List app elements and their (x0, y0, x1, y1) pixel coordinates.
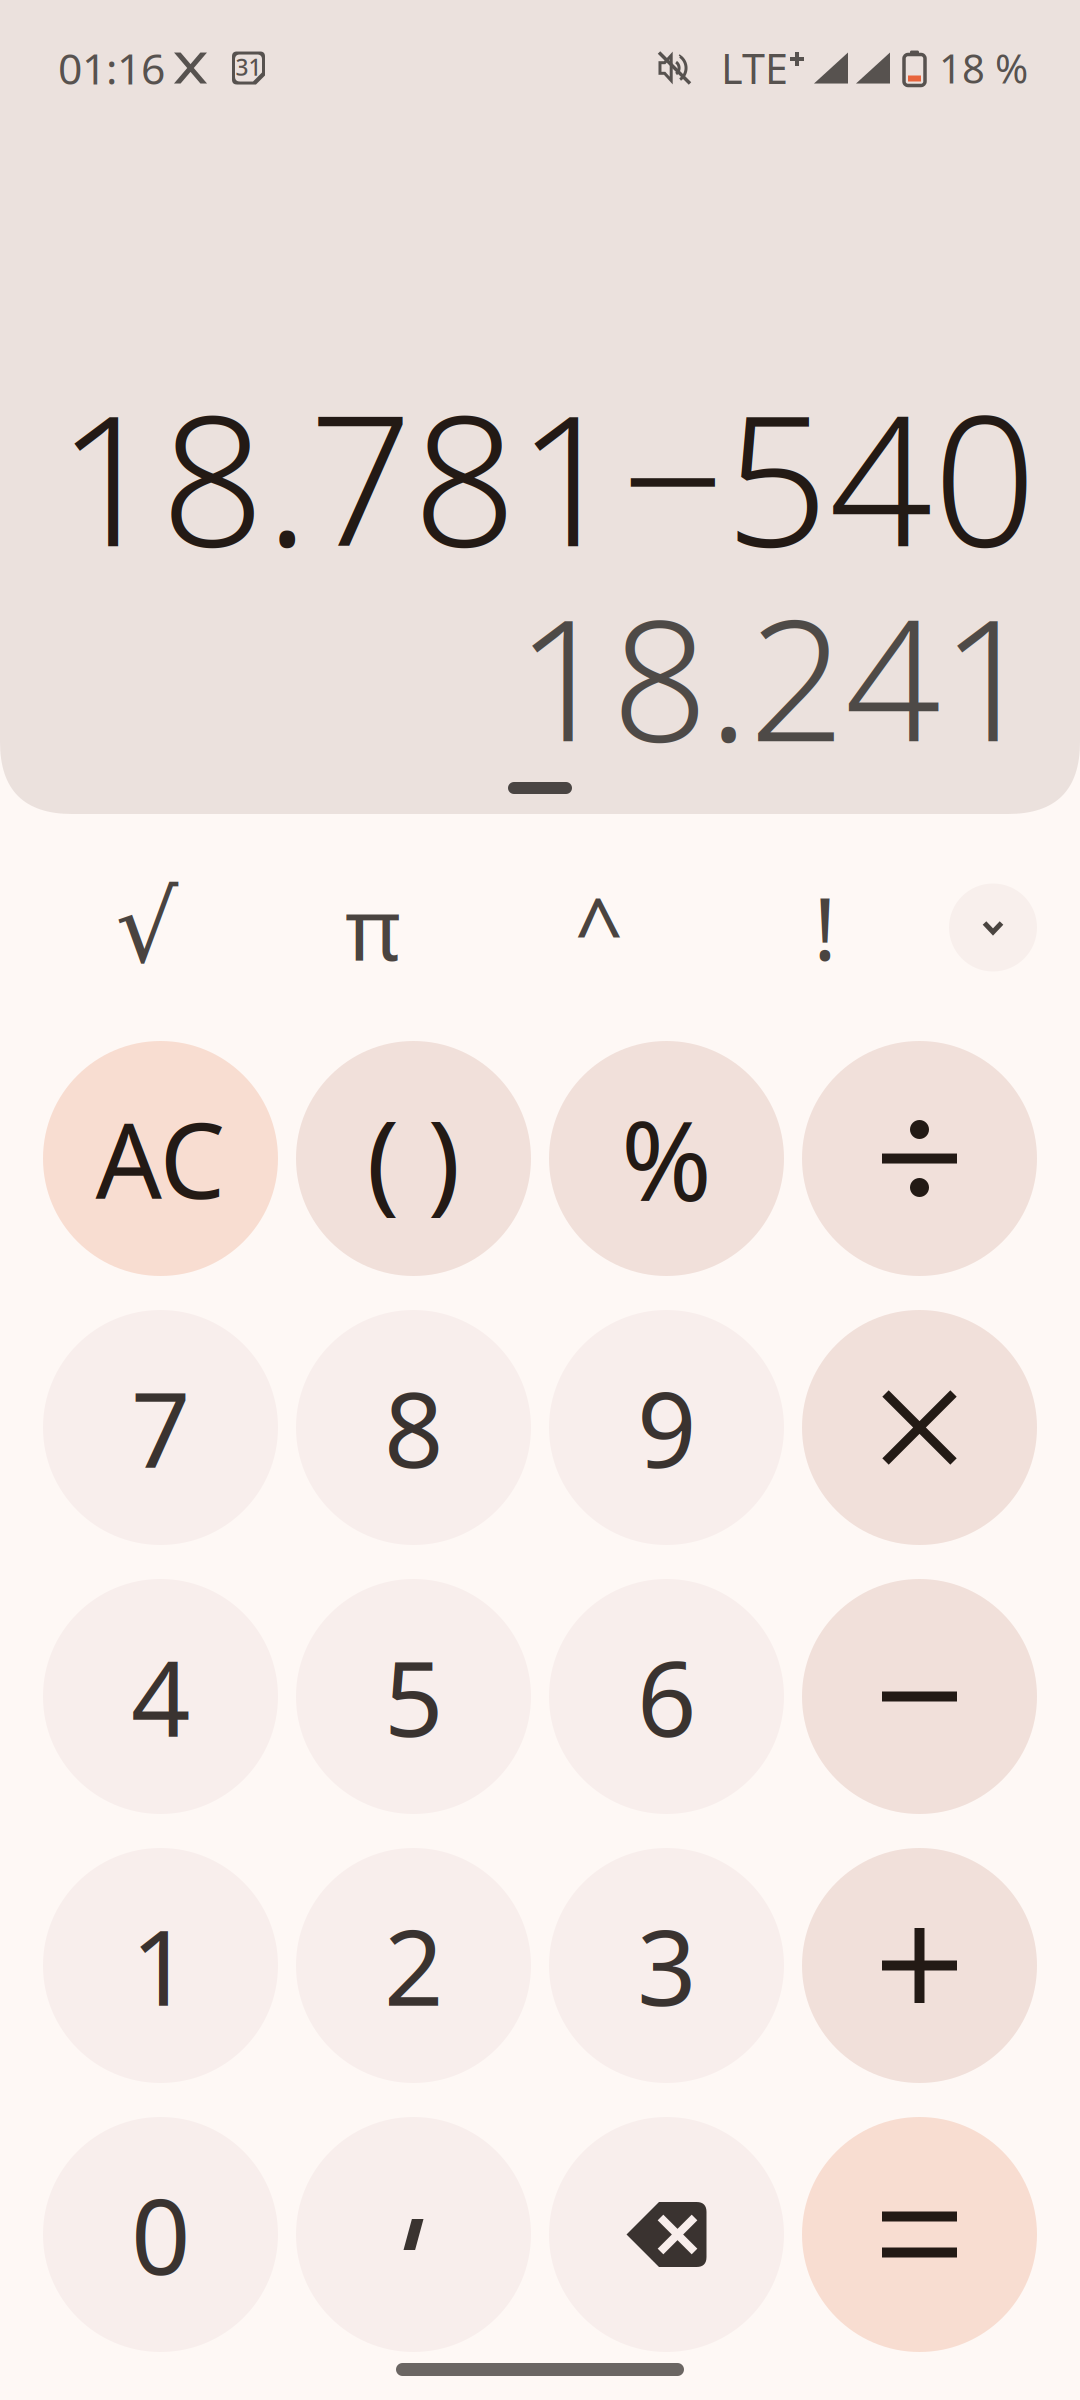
staticText: 01:16 (58, 40, 165, 96)
button[interactable]: 4 (43, 1579, 278, 1814)
staticText: 18 % (939, 41, 1028, 94)
button[interactable]: 0 (43, 2117, 278, 2352)
button[interactable]: 6 (549, 1579, 784, 1814)
button[interactable]: 9 (549, 1310, 784, 1545)
staticText: ( ) (366, 1086, 460, 1231)
button[interactable]: 7 (43, 1310, 278, 1545)
staticText: AC (95, 1089, 225, 1227)
staticText: 2 (384, 1896, 443, 2034)
button[interactable]: Divide (802, 1041, 1037, 1276)
staticText: LTE (721, 41, 788, 95)
staticText: ! (813, 871, 836, 984)
button[interactable]: Equals (802, 2117, 1037, 2352)
button[interactable]: 1 (43, 1848, 278, 2083)
button[interactable]: 2 (296, 1848, 531, 2083)
button[interactable]: Decimal separator (296, 2117, 531, 2352)
staticText: 0 (131, 2165, 190, 2303)
staticText: 18.781−540 (57, 356, 1037, 596)
staticText: 31 (235, 52, 261, 82)
button[interactable]: Multiply (802, 1310, 1037, 1545)
button[interactable]: Percent (549, 1041, 784, 1276)
button[interactable]: ^ (486, 814, 712, 1041)
staticText: 6 (637, 1627, 696, 1765)
staticText: 8 (384, 1358, 443, 1496)
staticText: 9 (637, 1358, 696, 1496)
button[interactable]: √ (34, 814, 260, 1041)
button[interactable]: More functions (949, 883, 1037, 971)
staticText: 4 (131, 1627, 190, 1765)
staticText: 5 (384, 1627, 443, 1765)
button[interactable]: Add (802, 1848, 1037, 2083)
staticText: √ (115, 871, 178, 983)
button[interactable]: Parentheses (296, 1041, 531, 1276)
button[interactable]: 5 (296, 1579, 531, 1814)
staticText: % (621, 1086, 712, 1231)
staticText: 1 (131, 1896, 190, 2034)
button[interactable]: Subtract (802, 1579, 1037, 1814)
button[interactable]: π (260, 814, 486, 1041)
button[interactable]: All clear (43, 1041, 278, 1276)
staticText: 18.241 (516, 564, 1037, 788)
staticText: ^ (574, 871, 623, 984)
button[interactable]: 3 (549, 1848, 784, 2083)
staticText: 7 (131, 1358, 190, 1496)
staticText: 3 (637, 1896, 696, 2034)
button[interactable]: 8 (296, 1310, 531, 1545)
staticText: π (345, 871, 401, 984)
button[interactable]: Delete (549, 2117, 784, 2352)
button[interactable]: ! (712, 814, 938, 1041)
